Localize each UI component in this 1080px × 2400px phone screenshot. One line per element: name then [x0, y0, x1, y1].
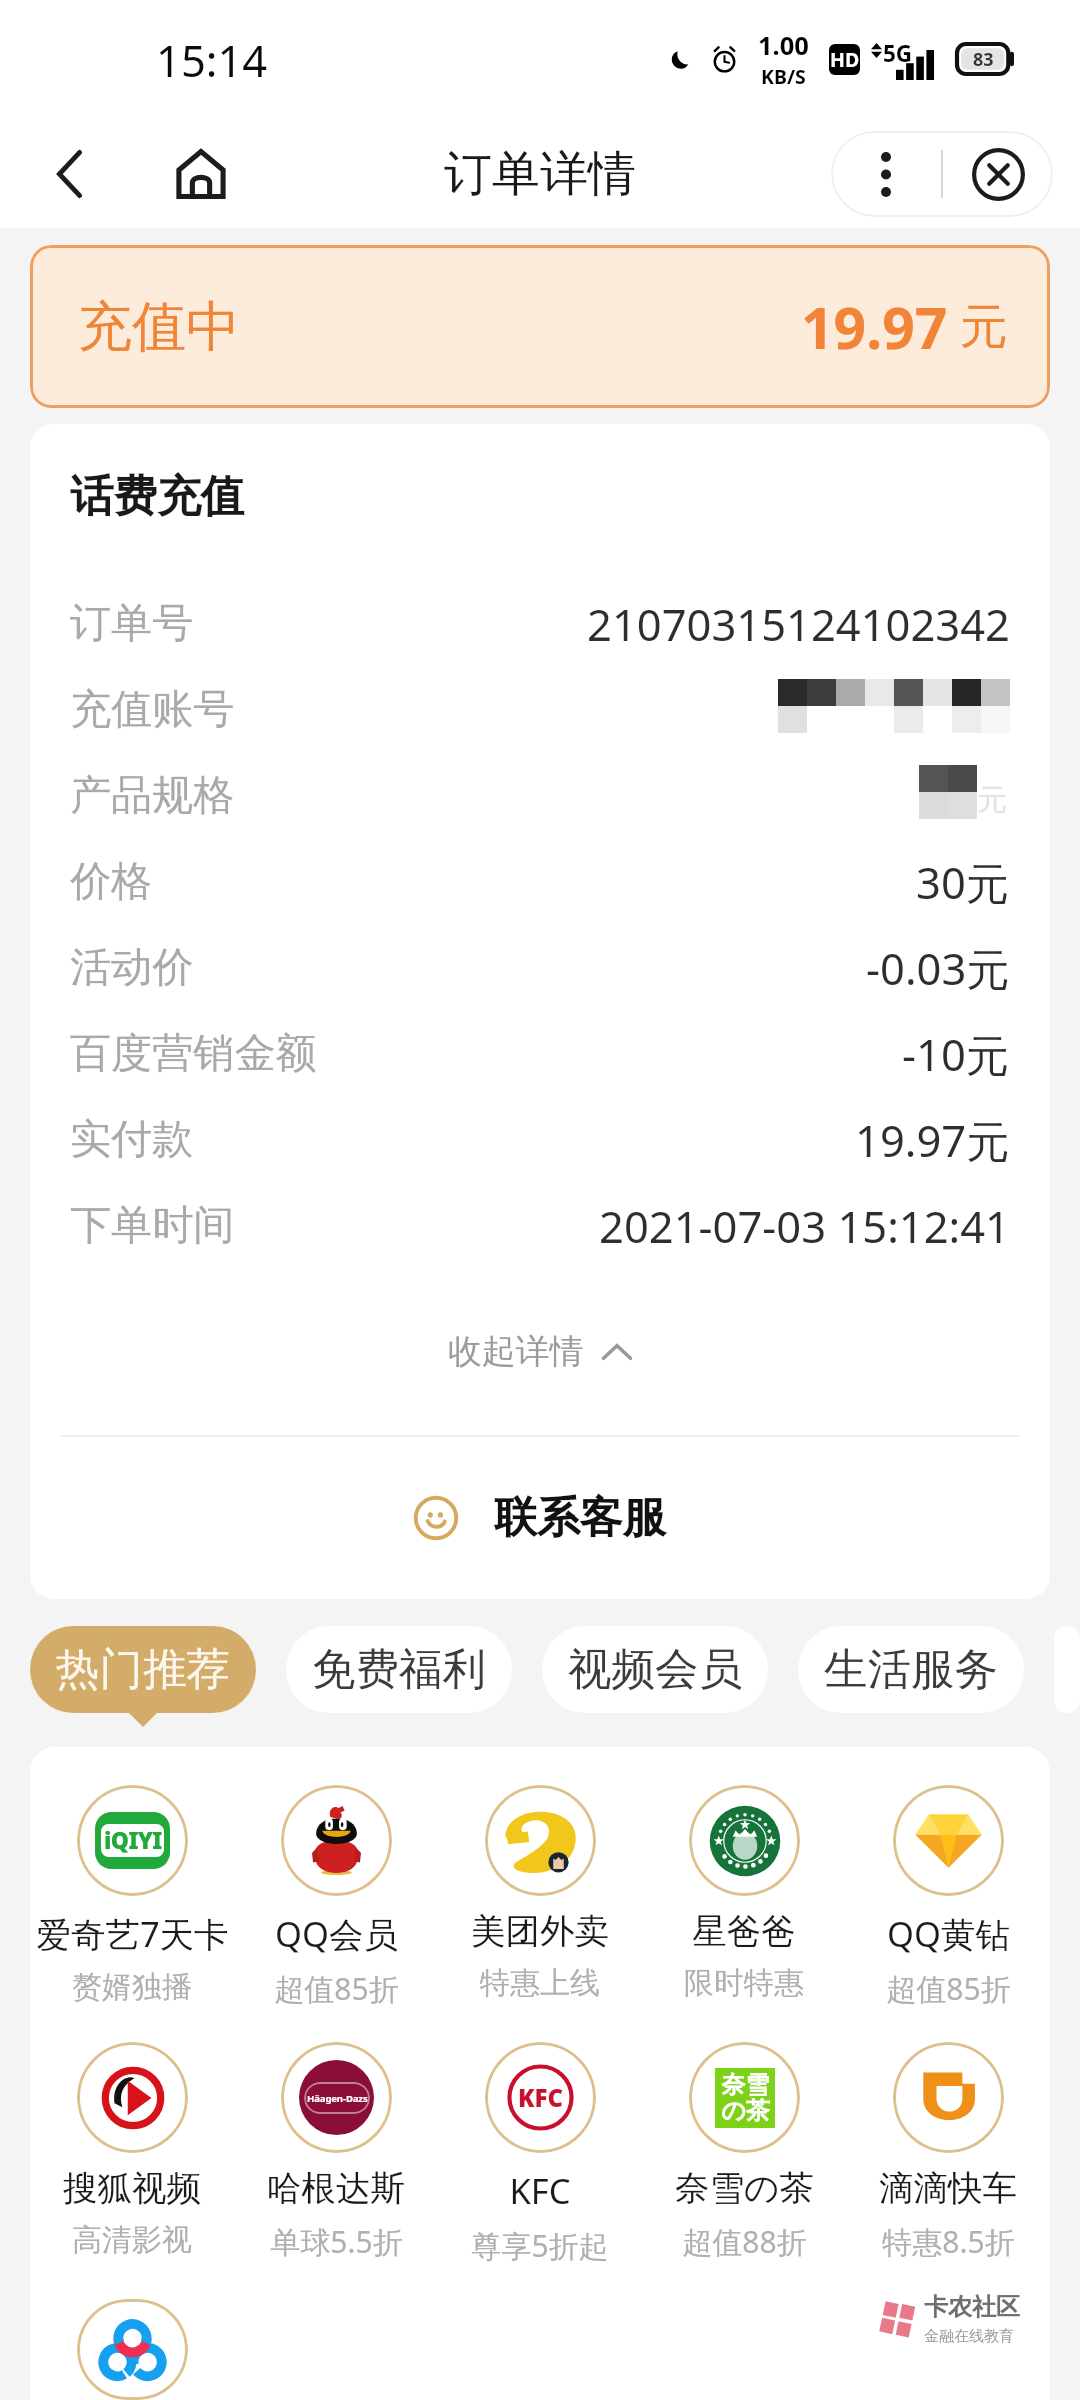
staticText: 特惠8.5折: [882, 2221, 1015, 2262]
staticText: 15:14: [156, 30, 268, 89]
staticText: 超值85折: [274, 1968, 399, 2009]
button[interactable]: 奈雪 の茶: [642, 2042, 846, 2295]
button[interactable]: 热门推荐: [30, 1626, 256, 1713]
button[interactable]: QQ黄钻: [846, 1785, 1050, 2042]
button[interactable]: 收起详情: [30, 1268, 1050, 1435]
staticText: QQ黄钻: [887, 1910, 1010, 1957]
staticText: KFC: [518, 2081, 563, 2114]
staticText: 83: [973, 47, 994, 72]
staticText: 生活服务: [824, 1642, 998, 1697]
staticText: 充值中: [78, 293, 240, 361]
staticText: 30元: [916, 852, 1010, 911]
staticText: 价格: [70, 855, 153, 907]
staticText: 滴滴快车: [879, 2167, 1017, 2210]
staticText: 19.97元: [855, 1110, 1010, 1169]
button[interactable]: [30, 2299, 234, 2400]
staticText: -0.03元: [866, 938, 1010, 997]
button[interactable]: 搜狐视频: [30, 2042, 234, 2292]
button[interactable]: 滴滴快车: [846, 2042, 1050, 2295]
button[interactable]: More options: [831, 131, 941, 217]
button[interactable]: iQIYI: [30, 1785, 234, 2039]
button[interactable]: 星爸爸: [642, 1785, 846, 2035]
button[interactable]: KFC: [438, 2042, 642, 2299]
staticText: 赘婿独播: [72, 1968, 192, 2006]
staticText: 限时特惠: [684, 1964, 804, 2002]
staticText: 收起详情: [448, 1330, 584, 1373]
staticText: 产品规格: [70, 769, 235, 821]
staticText: 免费福利: [312, 1642, 486, 1697]
staticText: 奈雪の茶: [675, 2167, 814, 2210]
staticText: iQIYI: [104, 1825, 162, 1856]
staticText: KB/S: [761, 63, 806, 90]
staticText: 下单时间: [70, 1199, 235, 1251]
staticText: 元: [977, 781, 1007, 819]
staticText: 奈雪 の茶: [721, 2070, 770, 2126]
staticText: 联系客服: [494, 1491, 666, 1545]
staticText: HD: [830, 46, 860, 73]
button[interactable]: 联系客服: [30, 1437, 1050, 1599]
staticText: 爱奇艺7天卡: [36, 1910, 229, 1957]
staticText: 卡农社区: [924, 2292, 1020, 2322]
button[interactable]: Back: [36, 129, 102, 219]
staticText: 订单号: [70, 597, 194, 649]
staticText: 话费充值: [70, 469, 244, 524]
staticText: 19.97: [801, 288, 948, 366]
staticText: 超值88折: [682, 2221, 807, 2262]
staticText: 21070315124102342: [587, 594, 1010, 653]
staticText: 尊享5折起: [471, 2225, 609, 2266]
staticText: 视频会员: [568, 1642, 742, 1697]
staticText: 热门推荐: [56, 1642, 230, 1697]
staticText: 搜狐视频: [63, 2167, 201, 2210]
staticText: 5G: [883, 38, 913, 69]
button[interactable]: 免费福利: [286, 1626, 512, 1713]
button[interactable]: 美团外卖: [438, 1785, 642, 2035]
staticText: 超值85折: [886, 1968, 1011, 2009]
staticText: 百度营销金额: [70, 1027, 317, 1079]
staticText: 金融在线教育: [924, 2327, 1014, 2346]
button[interactable]: Close: [943, 131, 1053, 217]
staticText: 1.00: [758, 28, 809, 63]
staticText: 美团外卖: [471, 1910, 609, 1953]
button[interactable]: 生活服务: [798, 1626, 1024, 1713]
button[interactable]: 充值中: [30, 245, 1050, 408]
button[interactable]: Häagen-Dazs: [234, 2042, 438, 2295]
staticText: -10元: [902, 1024, 1010, 1083]
staticText: 单球5.5折: [270, 2221, 403, 2262]
staticText: 充值账号: [70, 683, 235, 735]
staticText: 高清影视: [72, 2221, 192, 2259]
staticText: Häagen-Dazs: [307, 2092, 368, 2105]
staticText: 特惠上线: [480, 1964, 600, 2002]
staticText: 星爸爸: [692, 1910, 796, 1953]
staticText: 元: [960, 297, 1008, 357]
staticText: KFC: [509, 2167, 571, 2214]
button[interactable]: QQ会员: [234, 1785, 438, 2042]
staticText: 订单详情: [444, 144, 636, 204]
button[interactable]: Home: [168, 129, 234, 219]
staticText: 2021-07-03 15:12:41: [599, 1196, 1010, 1255]
button[interactable]: 视频会员: [542, 1626, 768, 1713]
staticText: 活动价: [70, 941, 194, 993]
staticText: 实付款: [70, 1113, 194, 1165]
staticText: 哈根达斯: [267, 2167, 405, 2210]
staticText: QQ会员: [275, 1910, 398, 1957]
